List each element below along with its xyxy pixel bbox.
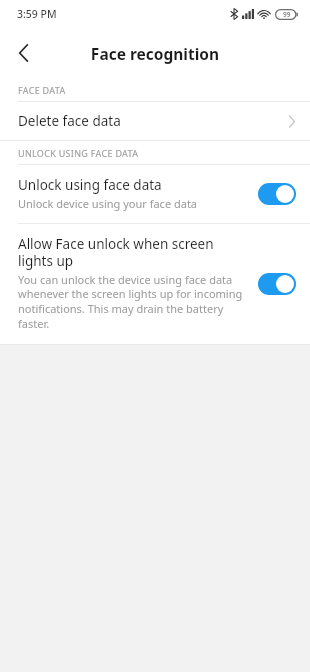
staticText: You can unlock the device using face dat… [18,272,244,332]
button[interactable]: Allow Face unlock when screen lights up [0,224,310,344]
staticText: FACE DATA [18,84,66,96]
staticText: 3:59 PM [17,7,57,21]
staticText: Unlock using face data [18,176,162,194]
button[interactable]: Unlock using face data [0,165,310,223]
button[interactable]: Toggle Allow Face unlock when screen lig… [258,273,296,295]
button[interactable]: Toggle Unlock using face data [258,183,296,205]
button[interactable]: Back [0,30,46,76]
staticText: Face recognition [0,43,310,64]
staticText: Delete face data [18,112,121,130]
button[interactable]: Delete face data [0,102,310,140]
staticText: UNLOCK USING FACE DATA [18,147,139,159]
staticText: Unlock device using your face data [18,196,198,211]
staticText: 99 [283,10,291,19]
staticText: Allow Face unlock when screen lights up [18,235,244,270]
